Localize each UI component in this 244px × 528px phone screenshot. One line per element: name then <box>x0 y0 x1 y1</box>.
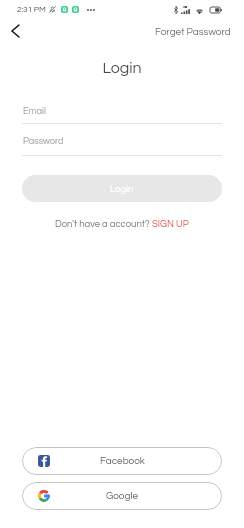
button[interactable]: SIGN UP <box>152 219 189 229</box>
button[interactable]: Google <box>22 482 222 510</box>
staticText: Password <box>23 136 64 145</box>
staticText: Facebook <box>100 456 145 466</box>
staticText: Google <box>106 491 139 501</box>
button[interactable]: Facebook <box>22 447 222 475</box>
staticText: Login <box>0 60 244 76</box>
staticText: Don't have a account? <box>55 219 152 229</box>
button[interactable]: Back <box>2 18 28 44</box>
staticText: 2:31 PM <box>17 5 46 14</box>
staticText: Forget Password <box>155 27 231 37</box>
staticText: SIGN UP <box>152 219 189 229</box>
staticText: Email <box>23 106 46 115</box>
button[interactable]: Login <box>22 175 222 202</box>
staticText: Login <box>110 184 134 194</box>
button[interactable]: Forget Password <box>155 27 231 37</box>
